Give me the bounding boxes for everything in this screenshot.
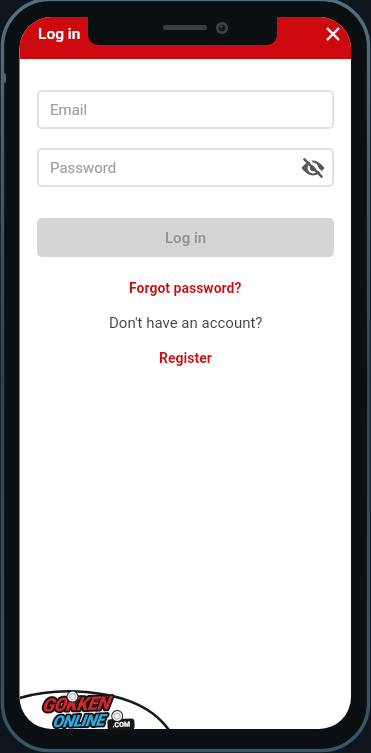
button[interactable]: Email [37,90,334,129]
staticText: Log in [38,25,81,43]
staticText: ONLINE [52,710,105,731]
staticText: GOKKEN [41,692,110,717]
button[interactable]: Log in [37,218,334,257]
staticText: GOKKEN [41,692,110,717]
button[interactable]: GOKKEN [39,685,141,737]
staticText: .COM [112,721,131,729]
staticText: ONLINE [52,710,105,731]
staticText: Password [50,159,117,177]
button[interactable]: Register [0,346,371,369]
staticText: Register [159,350,212,366]
staticText: Email [50,101,88,119]
staticText: Log in [165,229,207,247]
button[interactable] [320,21,346,47]
staticText: Forgot password? [129,280,242,296]
button[interactable]: Password [37,148,334,187]
staticText: Don't have an account? [109,314,263,332]
button[interactable] [300,155,326,181]
button[interactable]: Forgot password? [0,276,371,299]
